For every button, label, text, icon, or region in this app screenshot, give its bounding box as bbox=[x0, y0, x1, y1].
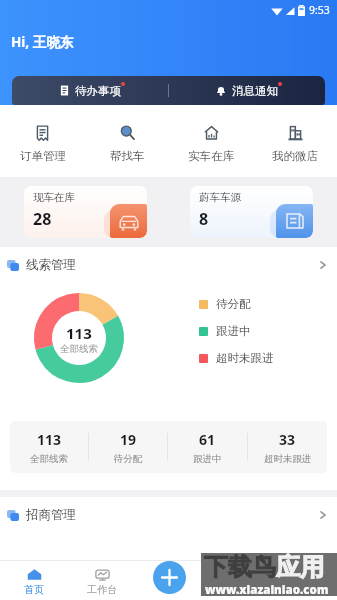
staticText: 订单管理 bbox=[20, 149, 66, 163]
staticText: 33 bbox=[279, 430, 296, 449]
button[interactable]: 113 bbox=[10, 430, 88, 465]
button[interactable]: Add bbox=[153, 561, 186, 594]
button[interactable]: 订单管理 bbox=[0, 105, 85, 177]
button[interactable]: 工作台 bbox=[68, 560, 136, 600]
staticText: 跟进中 bbox=[193, 453, 222, 465]
staticText: 工作台 bbox=[87, 583, 117, 596]
staticText: 全部线索 bbox=[30, 453, 68, 465]
staticText: 61 bbox=[199, 430, 216, 449]
button[interactable]: 蔚车车源 bbox=[190, 186, 313, 238]
button[interactable]: 首页 bbox=[0, 560, 68, 600]
staticText: Hi, 王晓东 bbox=[11, 33, 74, 51]
staticText: 消息通知 bbox=[232, 84, 278, 98]
staticText: 现车在库 bbox=[33, 191, 75, 204]
staticText: 19 bbox=[120, 430, 137, 449]
staticText: 线索管理 bbox=[26, 257, 76, 273]
button[interactable]: 消息通知 bbox=[169, 76, 325, 105]
staticText: 28 bbox=[33, 208, 52, 230]
staticText: 招商管理 bbox=[26, 507, 76, 523]
staticText: 9:53 bbox=[309, 3, 330, 17]
staticText: 全部线索 bbox=[60, 343, 98, 355]
button[interactable]: 招商管理 bbox=[7, 497, 326, 533]
staticText: 113 bbox=[37, 430, 62, 449]
staticText: 8 bbox=[199, 208, 209, 230]
staticText: www.xlazainiao.com bbox=[205, 582, 329, 598]
button[interactable]: 帮找车 bbox=[85, 105, 169, 177]
staticText: 跟进中 bbox=[216, 324, 251, 338]
button[interactable]: 现车在库 bbox=[24, 186, 147, 238]
button[interactable]: 我的微店 bbox=[253, 105, 337, 177]
staticText: 首页 bbox=[24, 583, 44, 596]
button[interactable]: 33 bbox=[248, 430, 327, 465]
staticText: 超时未跟进 bbox=[264, 453, 312, 465]
button[interactable]: 实车在库 bbox=[169, 105, 253, 177]
button[interactable]: 19 bbox=[89, 430, 167, 465]
staticText: 下载鸟 bbox=[204, 552, 276, 582]
staticText: 待分配 bbox=[114, 453, 143, 465]
staticText: 113 bbox=[66, 323, 92, 343]
staticText: 应用 bbox=[276, 552, 324, 582]
button[interactable]: 61 bbox=[168, 430, 247, 465]
button[interactable]: 待办事项 bbox=[12, 76, 168, 105]
staticText: 待办事项 bbox=[75, 84, 121, 98]
staticText: 蔚车车源 bbox=[199, 191, 241, 204]
staticText: 我的微店 bbox=[272, 149, 318, 163]
staticText: 超时未跟进 bbox=[216, 351, 274, 365]
staticText: 实车在库 bbox=[188, 149, 234, 163]
button[interactable]: 线索管理 bbox=[7, 247, 326, 283]
staticText: 帮找车 bbox=[110, 149, 145, 163]
staticText: 待分配 bbox=[216, 297, 251, 311]
